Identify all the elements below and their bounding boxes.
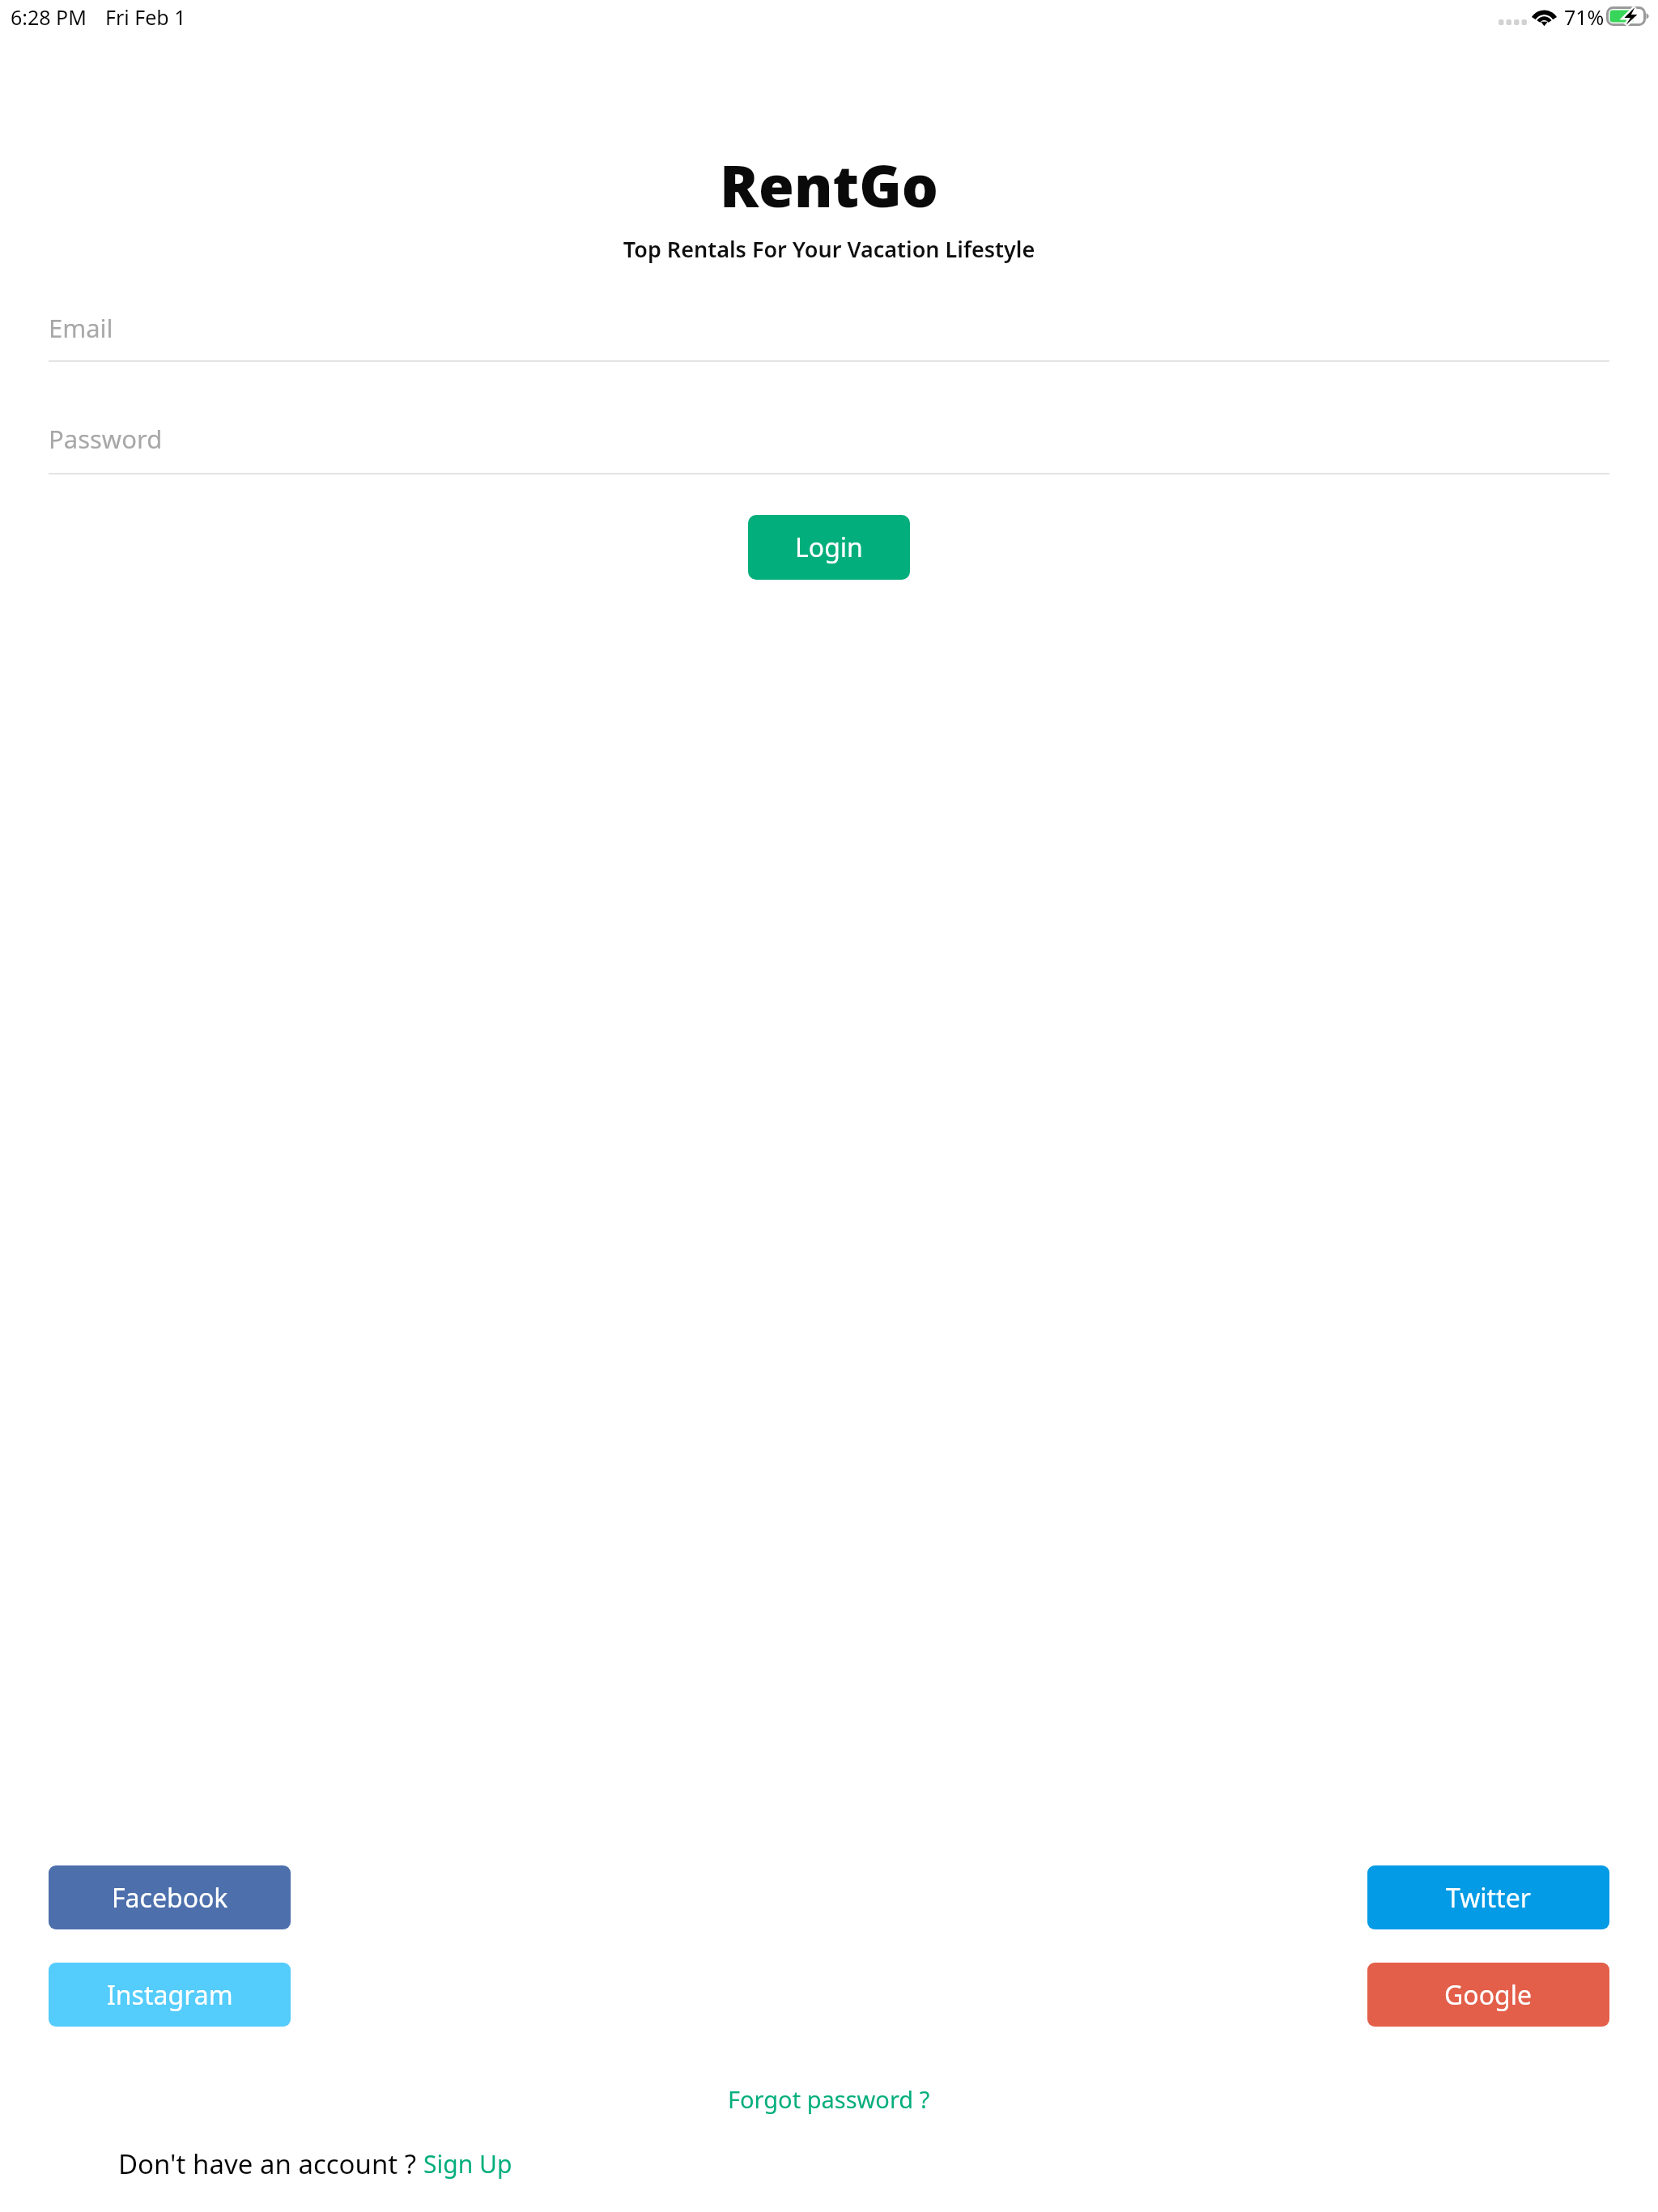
button[interactable]: Login — [748, 515, 910, 580]
other: Signal strength — [1499, 19, 1525, 25]
staticText: Login — [795, 530, 863, 565]
staticText: 71% — [1564, 3, 1605, 31]
staticText: Sign Up — [423, 2147, 512, 2180]
staticText: Top Rentals For Your Vacation Lifestyle — [0, 234, 1658, 264]
button[interactable]: Email — [49, 301, 1609, 363]
button[interactable]: Google — [1367, 1963, 1609, 2027]
staticText: Don't have an account ? — [118, 2146, 417, 2182]
staticText: Facebook — [112, 1880, 228, 1916]
staticText: RentGo — [0, 146, 1658, 224]
button[interactable]: Password — [49, 412, 1609, 474]
staticText: Forgot password ? — [728, 2083, 930, 2115]
button[interactable]: Forgot password ? — [720, 2078, 938, 2120]
staticText: Instagram — [107, 1977, 233, 2013]
staticText: Email — [49, 311, 113, 345]
button[interactable]: Instagram — [49, 1963, 291, 2027]
staticText: Fri Feb 1 — [105, 3, 186, 31]
button[interactable]: Twitter — [1367, 1865, 1609, 1929]
other: Battery 71 percent, charging — [1606, 6, 1649, 26]
staticText: 6:28 PM — [11, 3, 87, 31]
other: Wi-Fi connected — [1531, 6, 1558, 26]
staticText: Twitter — [1446, 1880, 1531, 1916]
button[interactable]: Sign Up — [423, 2147, 512, 2180]
staticText: Google — [1444, 1977, 1533, 2013]
button[interactable]: Facebook — [49, 1865, 291, 1929]
staticText: Password — [49, 422, 163, 456]
